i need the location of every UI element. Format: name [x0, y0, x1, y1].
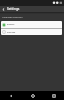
button[interactable]: Navigate up [0, 6, 7, 12]
staticText: English [7, 23, 15, 26]
button[interactable]: Back [0, 91, 22, 100]
button[interactable]: English [1, 21, 62, 28]
button[interactable]: Recent apps [43, 91, 64, 100]
staticText: Language selection [2, 16, 23, 19]
button[interactable]: Svenska [1, 29, 62, 35]
button[interactable]: Home [22, 91, 43, 100]
staticText: Settings [7, 7, 20, 11]
staticText: Svenska [7, 31, 16, 34]
